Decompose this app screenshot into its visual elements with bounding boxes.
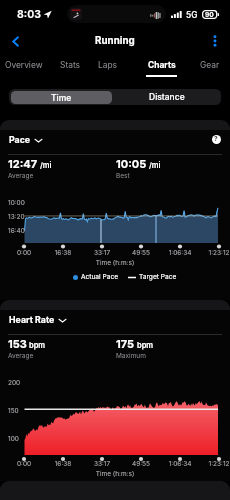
- staticText: 1:23:12: [201, 460, 230, 468]
- staticText: 10:05: [116, 157, 147, 170]
- staticText: ?: [214, 135, 218, 143]
- staticText: 33:17: [84, 249, 120, 257]
- staticText: 8:03: [17, 8, 41, 21]
- staticText: Best: [116, 172, 130, 180]
- staticText: 1:23:12: [201, 249, 230, 257]
- staticText: Time: [51, 93, 72, 103]
- staticText: 16:38: [45, 460, 81, 468]
- staticText: 0:00: [6, 460, 42, 468]
- staticText: bpm: [137, 341, 154, 350]
- staticText: 150: [8, 407, 19, 415]
- staticText: Running: [95, 35, 135, 47]
- staticText: 175: [116, 337, 135, 350]
- staticText: 200: [8, 379, 21, 387]
- staticText: Heart Rate: [9, 314, 55, 325]
- staticText: /mi: [149, 161, 161, 170]
- staticText: 10:00: [8, 199, 25, 207]
- button[interactable]: Time: [11, 91, 112, 104]
- staticText: Average: [8, 352, 34, 360]
- staticText: Laps: [98, 60, 118, 70]
- staticText: 5G: [186, 10, 198, 20]
- button[interactable]: Pace: [9, 134, 42, 145]
- staticText: Overview: [5, 60, 43, 70]
- staticText: Stats: [60, 60, 80, 70]
- staticText: Gear: [200, 60, 220, 70]
- staticText: /mi: [40, 161, 52, 170]
- button[interactable]: Stats: [46, 56, 94, 82]
- staticText: Pace: [9, 134, 31, 145]
- button[interactable]: More options: [204, 30, 226, 52]
- staticText: 49:55: [123, 460, 159, 468]
- staticText: 1:06:34: [162, 249, 198, 257]
- button[interactable]: Gear: [186, 56, 230, 82]
- staticText: Target Pace: [139, 273, 177, 281]
- button[interactable]: Overview: [0, 56, 48, 82]
- staticText: 12:47: [8, 157, 38, 170]
- staticText: 33:17: [84, 460, 120, 468]
- staticText: Time (h:m:s): [0, 470, 230, 478]
- button[interactable]: Help: [209, 132, 223, 146]
- button[interactable]: Heart Rate: [9, 314, 66, 325]
- staticText: 1:06:34: [162, 460, 198, 468]
- staticText: 90: [205, 11, 214, 19]
- staticText: 13:20: [8, 213, 25, 221]
- staticText: 153: [8, 337, 27, 350]
- staticText: Average: [8, 172, 34, 180]
- staticText: Actual Pace: [81, 273, 119, 281]
- staticText: Maximum: [116, 352, 146, 360]
- button[interactable]: Charts: [137, 56, 185, 82]
- button[interactable]: Back: [4, 30, 26, 52]
- button[interactable]: Laps: [84, 56, 132, 82]
- staticText: bpm: [29, 341, 46, 350]
- staticText: Distance: [149, 92, 185, 102]
- staticText: 16:38: [45, 249, 81, 257]
- staticText: Charts: [148, 60, 176, 70]
- staticText: 0:00: [6, 249, 42, 257]
- staticText: 49:55: [123, 249, 159, 257]
- staticText: 100: [8, 435, 19, 443]
- staticText: Time (h:m:s): [0, 259, 230, 267]
- staticText: 16:40: [8, 227, 25, 235]
- button[interactable]: Distance: [113, 89, 221, 105]
